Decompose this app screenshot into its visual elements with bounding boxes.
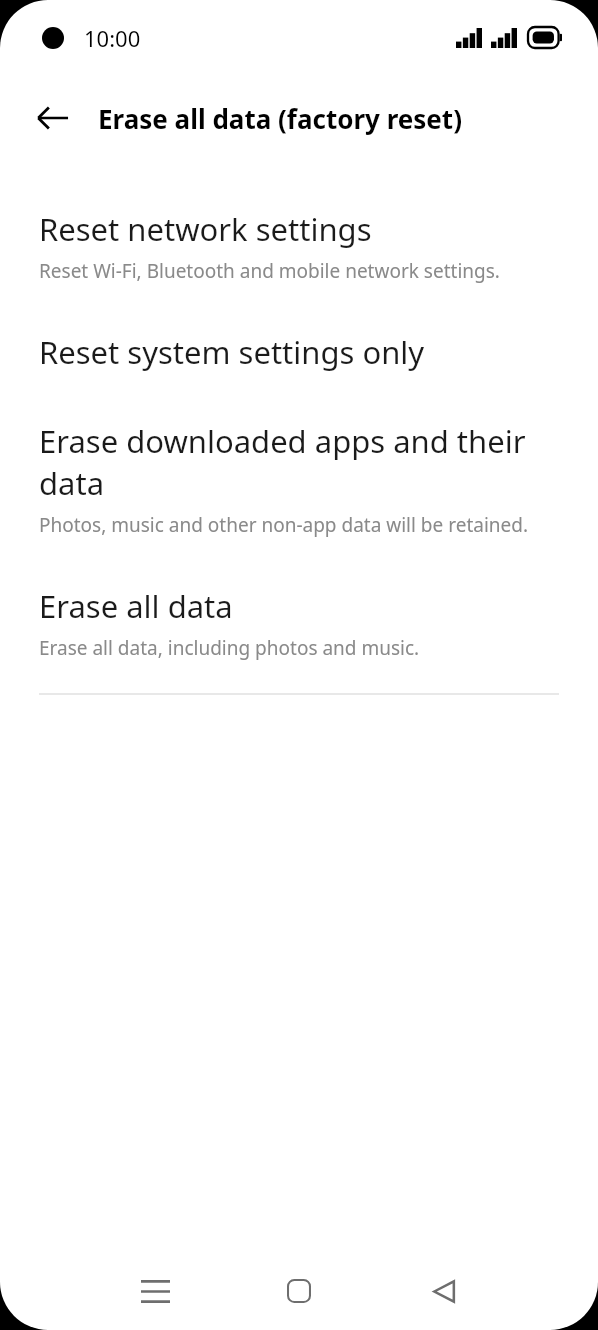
staticText: Erase all data — [39, 585, 233, 627]
button[interactable]: Back — [24, 89, 82, 147]
button[interactable]: Back — [395, 1252, 491, 1330]
staticText: Erase all data, including photos and mus… — [39, 635, 420, 661]
staticText: 10:00 — [84, 23, 141, 53]
button[interactable]: Reset system settings only — [0, 331, 598, 373]
button[interactable]: Erase all data — [0, 585, 598, 661]
button[interactable]: Erase downloaded apps and their data — [0, 420, 598, 538]
staticText: Erase all data (factory reset) — [98, 101, 462, 136]
staticText: Reset Wi-Fi, Bluetooth and mobile networ… — [39, 258, 500, 284]
staticText: Reset system settings only — [39, 331, 425, 373]
staticText: Photos, music and other non-app data wil… — [39, 512, 529, 538]
button[interactable]: Recent apps — [107, 1252, 203, 1330]
staticText: Erase downloaded apps and their data — [39, 420, 566, 504]
button[interactable]: Home — [251, 1252, 347, 1330]
button[interactable]: Reset network settings — [0, 208, 598, 284]
staticText: Reset network settings — [39, 208, 372, 250]
